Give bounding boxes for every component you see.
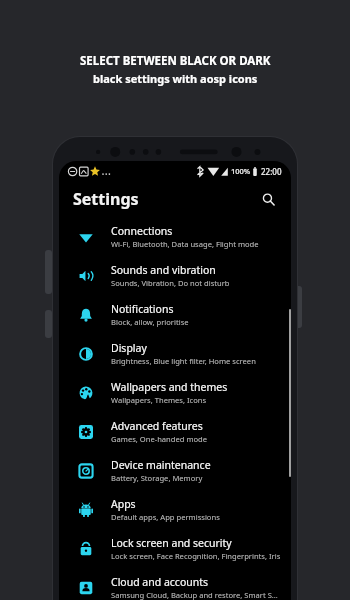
button[interactable]: Display <box>59 334 291 373</box>
staticText: Block, allow, prioritise <box>111 317 189 327</box>
staticText: Brightness, Blue light filter, Home scre… <box>111 356 256 366</box>
staticText: Cloud and accounts <box>111 575 209 589</box>
button[interactable]: Wallpapers and themes <box>59 373 291 412</box>
staticText: Default apps, App permissions <box>111 512 220 522</box>
button[interactable]: Advanced features <box>59 412 291 451</box>
staticText: Sounds, Vibration, Do not disturb <box>111 278 230 288</box>
button[interactable]: Sounds and vibration <box>59 256 291 295</box>
staticText: SELECT BETWEEN BLACK OR DARK <box>80 53 271 69</box>
staticText: Device maintenance <box>111 458 211 472</box>
staticText: Lock screen and security <box>111 536 232 550</box>
button[interactable]: Device maintenance <box>59 451 291 490</box>
staticText: Lock screen, Face Recognition, Fingerpri… <box>111 551 281 561</box>
button[interactable]: Cloud and accounts <box>59 568 291 600</box>
staticText: 22:00 <box>261 166 282 177</box>
staticText: Wi-Fi, Bluetooth, Data usage, Flight mod… <box>111 239 259 249</box>
staticText: black settings with aosp icons <box>93 71 258 86</box>
staticText: Apps <box>111 497 136 511</box>
staticText: Games, One-handed mode <box>111 434 208 444</box>
staticText: Display <box>111 341 147 355</box>
button[interactable]: Lock screen and security <box>59 529 291 568</box>
button[interactable]: Apps <box>59 490 291 529</box>
staticText: Connections <box>111 224 173 238</box>
staticText: Notifications <box>111 302 174 316</box>
staticText: Settings <box>73 188 139 210</box>
staticText: Wallpapers, Themes, Icons <box>111 395 207 405</box>
staticText: 100% <box>231 166 251 176</box>
button[interactable]: Connections <box>59 217 291 256</box>
staticText: Samsung Cloud, Backup and restore, Smart… <box>111 590 283 600</box>
staticText: Battery, Storage, Memory <box>111 473 203 483</box>
staticText: Sounds and vibration <box>111 263 216 277</box>
button[interactable]: Notifications <box>59 295 291 334</box>
staticText: Advanced features <box>111 419 203 433</box>
button[interactable]: Search <box>255 186 281 212</box>
staticText: Wallpapers and themes <box>111 380 228 394</box>
